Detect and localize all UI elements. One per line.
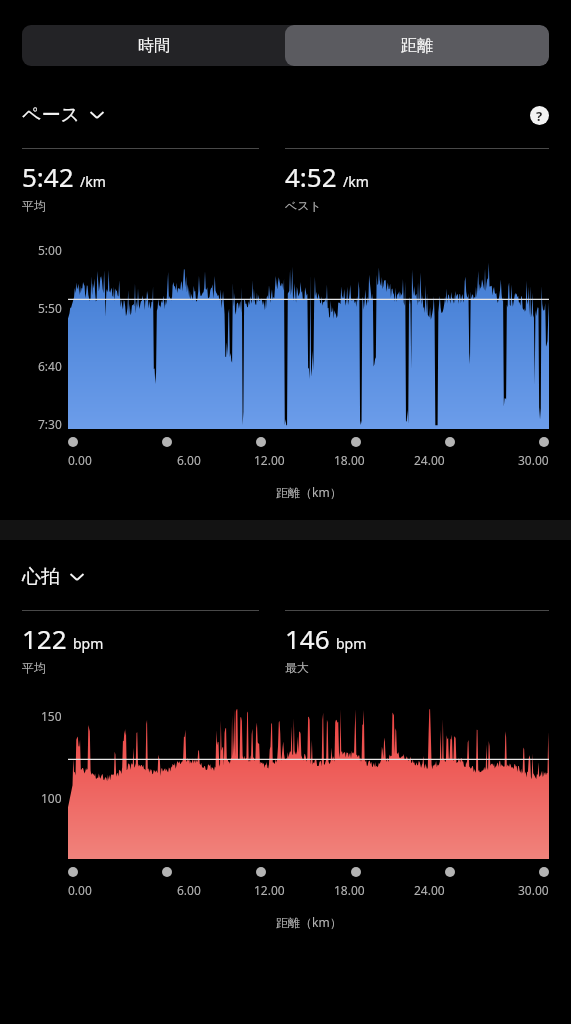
staticText: 5:00 [38,242,62,258]
button[interactable]: Help [530,106,549,125]
staticText: 5:42 [22,159,74,194]
staticText: 30.00 [518,452,549,468]
staticText: 18.00 [334,882,365,898]
staticText: 12.00 [254,452,285,468]
staticText: 距離（km） [276,914,342,930]
staticText: 時間 [138,36,170,56]
staticText: 150 [41,708,62,724]
staticText: 122 [22,621,67,656]
staticText: 18.00 [334,452,365,468]
staticText: ペース [22,103,80,127]
staticText: 100 [41,790,62,806]
staticText: ベスト [285,198,322,213]
staticText: 7:30 [38,416,62,432]
staticText: 146 [285,621,330,656]
staticText: 30.00 [518,882,549,898]
staticText: 平均 [22,198,46,213]
staticText: 0.00 [68,452,92,468]
staticText: 平均 [22,660,46,675]
staticText: 6:40 [38,358,62,374]
staticText: ? [536,107,543,125]
staticText: 24.00 [414,882,445,898]
staticText: 6.00 [177,882,201,898]
staticText: 24.00 [414,452,445,468]
staticText: 最大 [285,660,309,675]
button[interactable]: 時間 [22,25,285,66]
staticText: bpm [73,634,104,653]
button[interactable]: ペース [22,103,105,127]
staticText: 心拍 [22,565,60,589]
staticText: bpm [336,634,367,653]
staticText: 0.00 [68,882,92,898]
staticText: 4:52 [285,159,337,194]
staticText: 12.00 [254,882,285,898]
staticText: 5:50 [38,300,62,316]
staticText: 距離 [401,36,433,56]
staticText: 6.00 [177,452,201,468]
staticText: /km [343,172,369,191]
button[interactable]: 心拍 [22,565,85,589]
button[interactable]: 距離 [285,25,549,66]
staticText: 距離（km） [276,484,342,500]
staticText: /km [80,172,106,191]
